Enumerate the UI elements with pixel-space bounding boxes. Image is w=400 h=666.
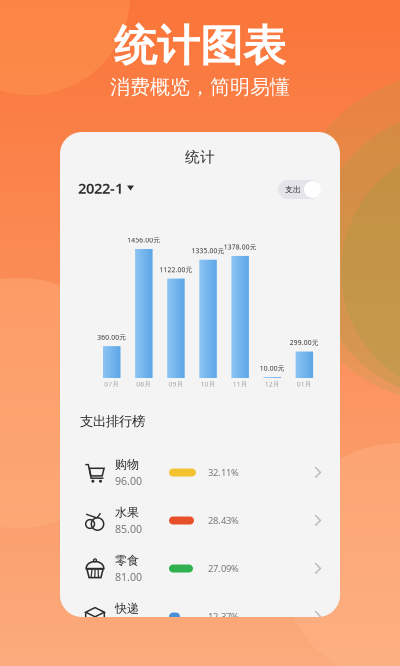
staticText: 2022-1 [78,178,123,198]
staticText: 360.00元 [97,333,126,342]
staticText: 1335.00元 [192,246,225,255]
staticText: 零食 [115,553,139,568]
button[interactable]: 快递 [60,593,340,640]
staticText: 32.11% [208,466,239,479]
staticText: 09月 [168,379,183,389]
staticText: 10月 [201,379,216,389]
staticText: 支出 [285,184,301,195]
staticText: 11月 [233,379,248,389]
staticText: 01月 [297,379,312,389]
staticText: 消费概览，简明易懂 [110,75,290,99]
staticText: 水果 [115,505,139,520]
button[interactable]: 购物 [60,449,340,496]
staticText: 1122.00元 [159,265,192,274]
staticText: 299.00元 [290,338,319,347]
staticText: 支出排行榜 [80,413,145,429]
staticText: 购物 [115,457,139,472]
staticText: 统计图表 [114,20,286,72]
staticText: 07月 [104,379,119,389]
staticText: 81.00 [115,570,142,584]
staticText: 1456.00元 [127,235,160,245]
staticText: 1378.00元 [224,242,257,251]
staticText: 27.09% [208,562,239,575]
button[interactable]: 2022-1 [78,177,144,199]
staticText: 10.00元 [260,364,285,373]
staticText: 28.43% [208,514,239,527]
staticText: 12月 [265,379,280,389]
button[interactable]: 零食 [60,545,340,592]
staticText: 85.00 [115,522,142,536]
staticText: 快递 [115,601,139,616]
button[interactable]: 支出 [278,180,321,199]
staticText: 统计 [185,148,215,166]
staticText: 12.37% [208,610,239,623]
staticText: 96.00 [115,474,142,488]
button[interactable]: 水果 [60,497,340,544]
staticText: 08月 [136,379,151,389]
